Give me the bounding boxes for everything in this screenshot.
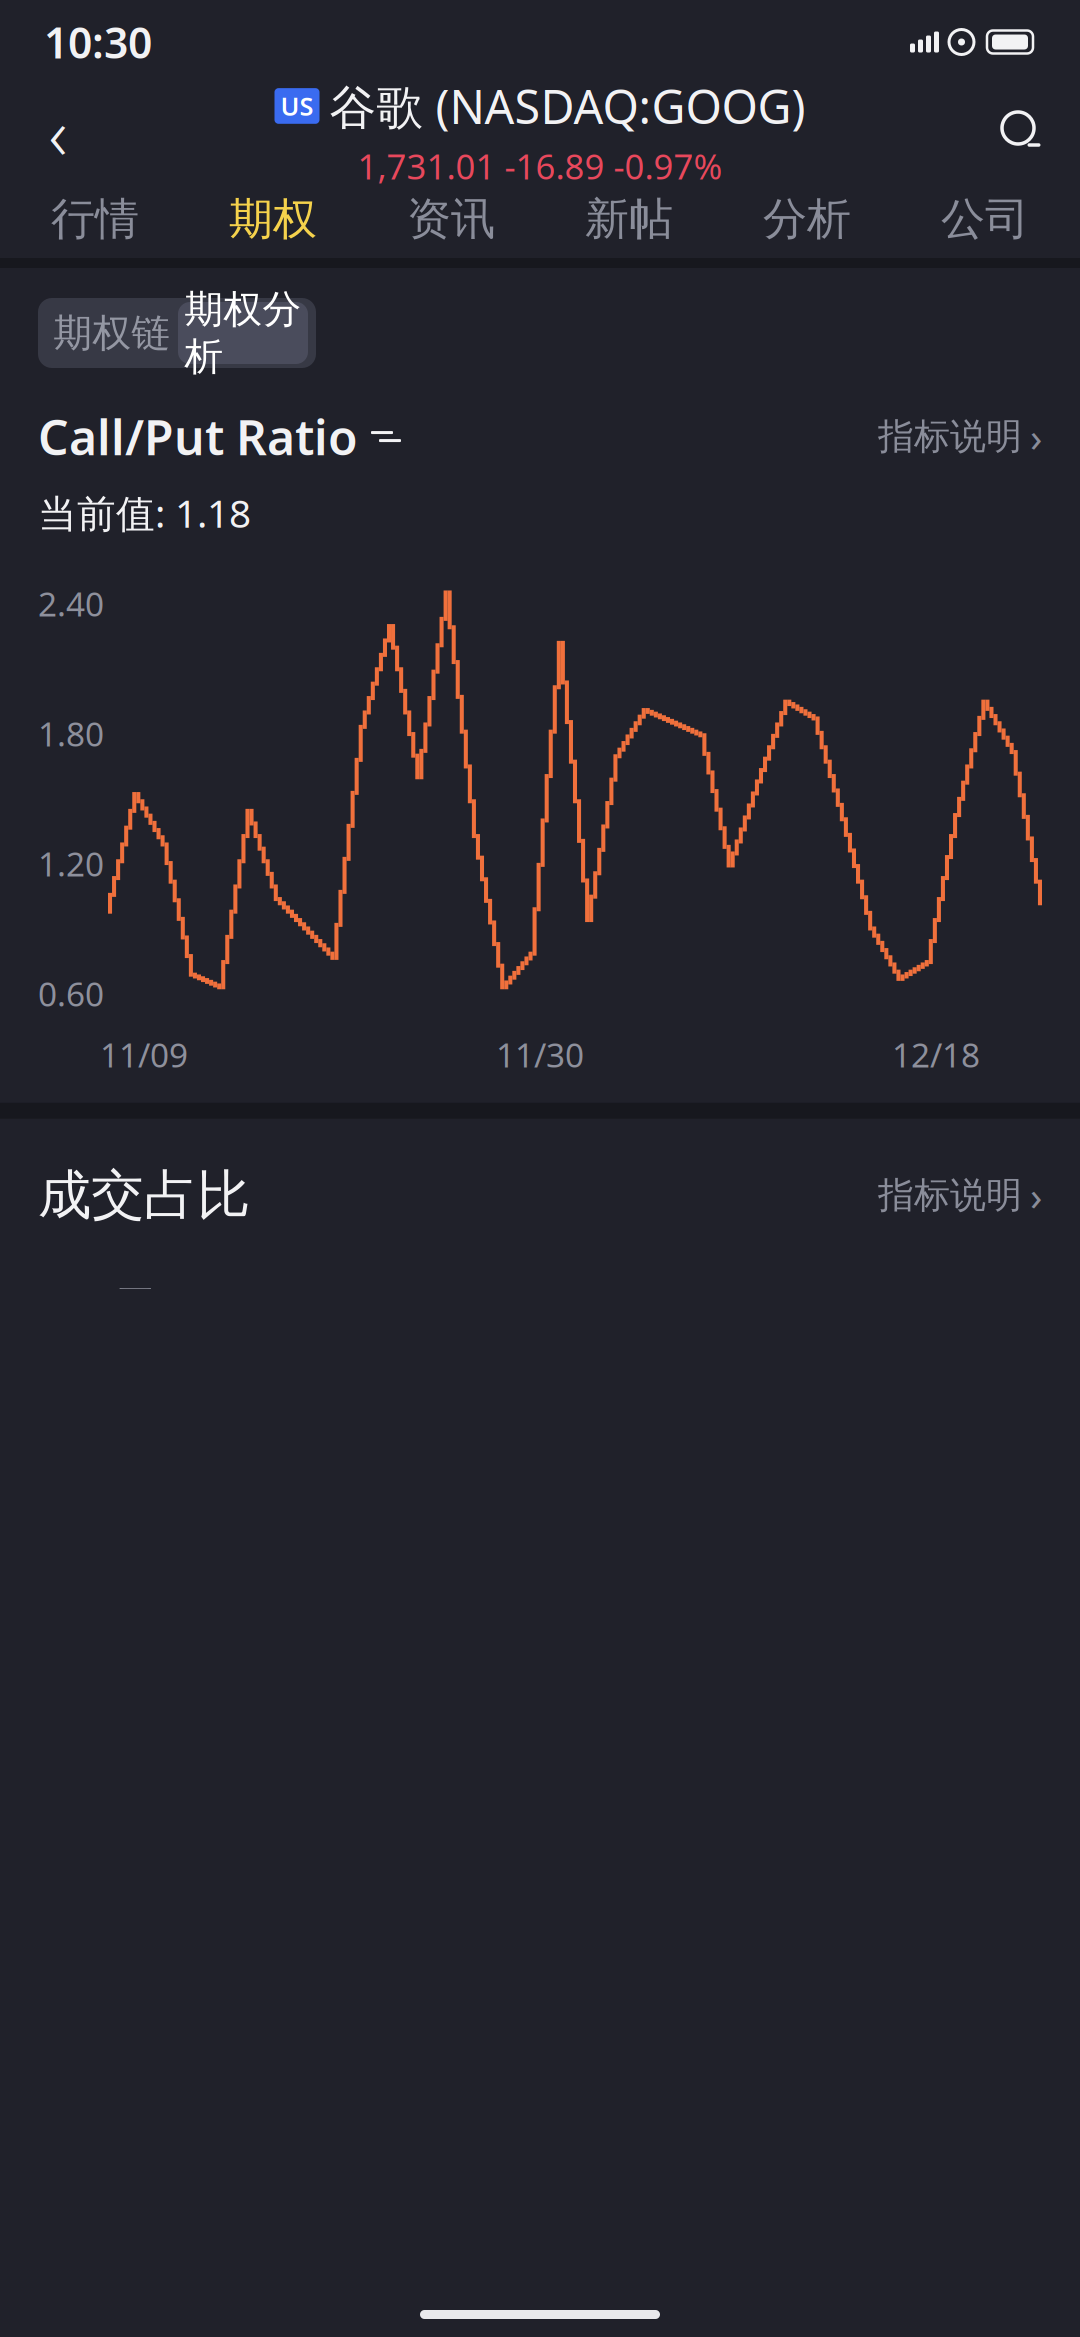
staticText: 1,731.01 -16.89 -0.97% (357, 143, 722, 189)
staticText: 资讯 (407, 192, 495, 246)
staticText: 18.00万 (34, 1279, 152, 1323)
staticText: ‹ (48, 84, 67, 180)
button[interactable]: 期权分析 (178, 302, 308, 364)
button[interactable]: 指标说明 (878, 1161, 1042, 1230)
button[interactable]: 期权链 (46, 300, 178, 366)
staticText: 10:30 (44, 14, 152, 70)
staticText: 行情 (51, 192, 139, 246)
staticText: › (1030, 410, 1042, 463)
staticText: US (280, 89, 313, 123)
staticText: 期权 (229, 192, 317, 246)
button[interactable]: 分析 (718, 180, 896, 258)
staticText: 2.40 (38, 581, 104, 626)
button[interactable]: 资讯 (362, 180, 540, 258)
staticText: 11/30 (496, 1032, 584, 1077)
button[interactable]: 指标说明 (878, 402, 1042, 471)
staticText: 分析 (763, 192, 851, 246)
staticText: 公司 (941, 192, 1029, 246)
staticText: 0.60 (38, 971, 104, 1016)
button[interactable]: Search (976, 86, 1068, 178)
staticText: 当前值: 1.18 (38, 487, 251, 538)
staticText: 成交占比 (38, 1162, 250, 1228)
button[interactable]: 新帖 (540, 180, 718, 258)
staticText: 谷歌 (NASDAQ:GOOG) (329, 75, 805, 137)
button[interactable]: 公司 (896, 180, 1074, 258)
staticText: 新帖 (585, 192, 673, 246)
staticText: 1.80 (38, 711, 104, 756)
staticText: 指标说明 (878, 1173, 1022, 1217)
staticText: 1.20 (38, 841, 104, 886)
staticText: Call/Put Ratio (38, 405, 358, 468)
button[interactable]: 行情 (6, 180, 184, 258)
staticText: 12/18 (892, 1032, 980, 1077)
staticText: › (1030, 1169, 1042, 1222)
button[interactable]: Back (12, 86, 104, 178)
staticText: 11/09 (100, 1032, 188, 1077)
button[interactable]: 期权 (184, 180, 362, 258)
staticText: 期权分析 (184, 285, 301, 380)
staticText: 期权链 (53, 309, 170, 357)
staticText: 指标说明 (878, 414, 1022, 459)
